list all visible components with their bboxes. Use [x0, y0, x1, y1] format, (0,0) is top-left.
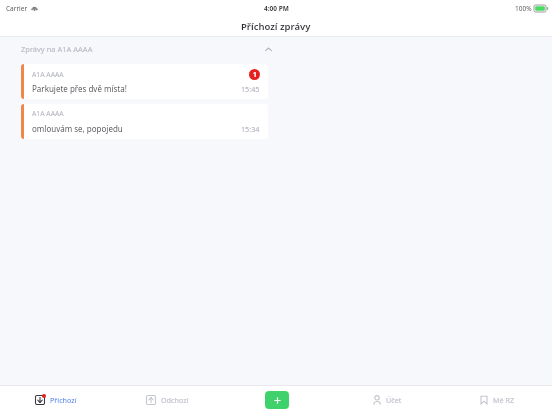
staticText: Carrier	[6, 4, 28, 13]
staticText: A1A AAAA	[32, 109, 64, 118]
button[interactable]: Zprávy na A1A AAAA	[0, 37, 552, 60]
button[interactable]: Odchozí	[111, 386, 222, 414]
button[interactable]: A1A AAAA	[21, 64, 268, 99]
staticText: Příchozí	[50, 395, 77, 405]
staticText: 15:34	[241, 124, 260, 134]
staticText: Účet	[386, 395, 402, 405]
staticText: 100%	[515, 4, 532, 13]
staticText: A1A AAAA	[32, 70, 64, 79]
staticText: 4:00 PM	[264, 4, 289, 13]
staticText: Odchozí	[161, 395, 189, 405]
staticText: Zprávy na A1A AAAA	[21, 44, 93, 54]
staticText: Mé RZ	[493, 395, 515, 405]
staticText: Příchozí zprávy	[241, 20, 311, 33]
button[interactable]: Příchozí	[0, 386, 111, 414]
button[interactable]: New message	[265, 391, 289, 409]
button[interactable]: A1A AAAA	[21, 104, 268, 139]
staticText: 15:45	[241, 84, 260, 94]
staticText: omlouvám se, popojedu	[32, 123, 123, 134]
staticText: 1	[253, 70, 257, 79]
button[interactable]: Collapse section	[260, 41, 276, 57]
button[interactable]: Mé RZ	[442, 386, 552, 414]
button[interactable]: Účet	[332, 386, 442, 414]
staticText: Parkujete přes dvě místa!	[32, 83, 127, 94]
